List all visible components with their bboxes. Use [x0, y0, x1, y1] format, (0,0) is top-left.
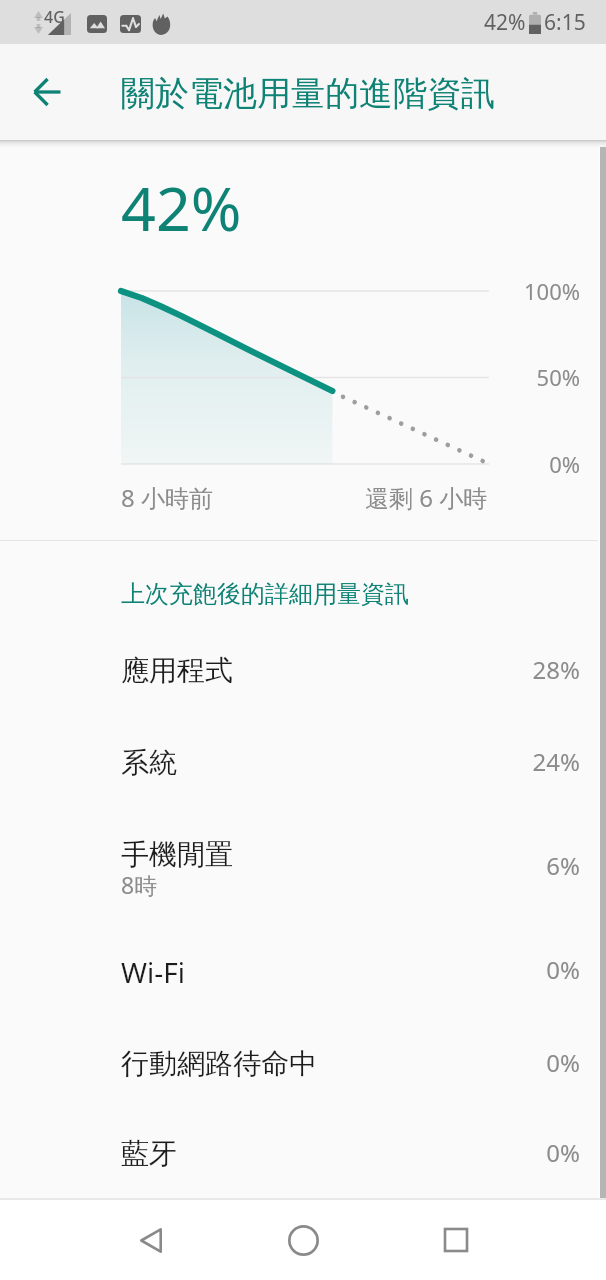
button[interactable]: Back: [119, 1208, 183, 1272]
button[interactable]: Back: [19, 64, 75, 120]
staticText: 50%: [500, 362, 580, 392]
staticText: 手機閒置: [121, 837, 233, 872]
button[interactable]: Home: [271, 1208, 335, 1272]
staticText: 8 小時前: [121, 481, 213, 514]
staticText: 8時: [121, 869, 158, 900]
staticText: 行動網路待命中: [121, 1046, 317, 1081]
staticText: 應用程式: [121, 653, 233, 688]
staticText: 藍牙: [121, 1136, 177, 1171]
staticText: 24%: [500, 745, 580, 778]
staticText: 0%: [500, 449, 580, 479]
staticText: 0%: [500, 1046, 580, 1079]
staticText: 4G: [44, 6, 65, 28]
staticText: 0%: [500, 1136, 580, 1169]
staticText: 42%: [484, 8, 526, 37]
staticText: 6:15: [544, 8, 586, 37]
button[interactable]: 系統: [0, 738, 606, 830]
button[interactable]: 藍牙: [0, 1129, 606, 1219]
staticText: Wi-Fi: [121, 953, 186, 991]
staticText: 100%: [500, 276, 580, 306]
button[interactable]: 行動網路待命中: [0, 1039, 606, 1129]
button[interactable]: Recents: [424, 1208, 488, 1272]
staticText: 0%: [500, 953, 580, 986]
staticText: 關於電池用量的進階資訊: [121, 72, 495, 115]
button[interactable]: 手機閒置: [0, 830, 606, 951]
staticText: 28%: [500, 653, 580, 686]
staticText: 系統: [121, 745, 177, 780]
staticText: 還剩 6 小時: [365, 481, 488, 514]
button[interactable]: Wi-Fi: [0, 946, 606, 1034]
button[interactable]: 應用程式: [0, 646, 606, 738]
staticText: 6%: [500, 849, 580, 882]
staticText: 上次充飽後的詳細用量資訊: [121, 579, 409, 609]
staticText: 42%: [121, 166, 242, 249]
